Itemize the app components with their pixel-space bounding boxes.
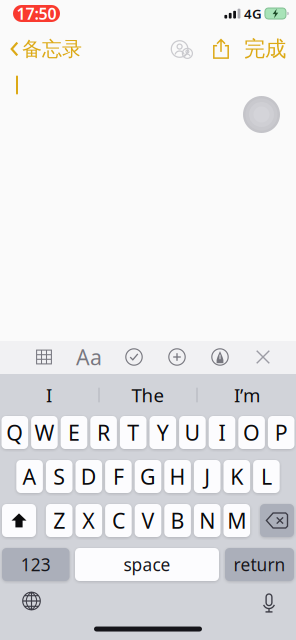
staticText: Aa bbox=[76, 343, 102, 371]
staticText: S bbox=[53, 462, 65, 491]
button[interactable]: Shift bbox=[2, 504, 36, 537]
button[interactable]: J bbox=[194, 460, 220, 493]
staticText: 备忘录 bbox=[22, 37, 82, 61]
button[interactable]: N bbox=[194, 504, 220, 537]
button[interactable]: The bbox=[99, 377, 196, 413]
staticText: 17:50 bbox=[16, 3, 56, 24]
button[interactable]: X bbox=[75, 504, 102, 537]
staticText: The bbox=[131, 383, 164, 407]
button[interactable]: D bbox=[75, 460, 102, 493]
button[interactable]: 备忘录 bbox=[1, 29, 91, 69]
button[interactable]: V bbox=[135, 504, 161, 537]
staticText: P bbox=[275, 418, 288, 447]
button[interactable]: R bbox=[90, 416, 117, 449]
button[interactable]: E bbox=[61, 416, 87, 449]
button[interactable]: return bbox=[225, 548, 294, 581]
button[interactable]: Format bbox=[68, 335, 110, 379]
staticText: Q bbox=[6, 418, 23, 447]
button[interactable]: Markup bbox=[203, 340, 237, 374]
button[interactable]: Add People bbox=[163, 31, 201, 67]
button[interactable]: O bbox=[238, 416, 265, 449]
staticText: 完成 bbox=[244, 36, 286, 62]
button[interactable]: Table bbox=[28, 341, 60, 372]
button[interactable]: Z bbox=[46, 504, 72, 537]
staticText: B bbox=[171, 506, 185, 535]
button[interactable]: Checklist bbox=[117, 340, 151, 374]
staticText: H bbox=[170, 462, 186, 491]
staticText: L bbox=[261, 462, 272, 491]
button[interactable]: Delete bbox=[260, 504, 294, 537]
staticText: C bbox=[112, 506, 125, 535]
button[interactable]: Close Keyboard bbox=[247, 341, 278, 372]
staticText: G bbox=[140, 462, 156, 491]
button[interactable]: I bbox=[209, 416, 235, 449]
button[interactable]: Y bbox=[149, 416, 176, 449]
button[interactable]: C bbox=[105, 504, 132, 537]
button[interactable]: Add Attachment bbox=[160, 340, 194, 374]
button[interactable]: T bbox=[120, 416, 146, 449]
staticText: A bbox=[23, 462, 37, 491]
staticText: I bbox=[46, 383, 52, 407]
button[interactable]: H bbox=[164, 460, 191, 493]
staticText: 4G bbox=[244, 5, 262, 22]
staticText: J bbox=[204, 462, 210, 491]
button[interactable]: G bbox=[135, 460, 161, 493]
staticText: D bbox=[81, 462, 97, 491]
staticText: space bbox=[123, 553, 170, 576]
button[interactable]: F bbox=[105, 460, 132, 493]
button[interactable]: 123 bbox=[2, 548, 69, 581]
button[interactable]: Switch Keyboard bbox=[15, 584, 48, 617]
staticText: X bbox=[82, 506, 95, 535]
button[interactable]: M bbox=[223, 504, 250, 537]
staticText: F bbox=[113, 462, 124, 491]
button[interactable]: S bbox=[46, 460, 72, 493]
staticText: return bbox=[233, 553, 285, 576]
staticText: W bbox=[34, 418, 54, 447]
staticText: M bbox=[227, 506, 246, 535]
button[interactable]: I’m bbox=[198, 377, 295, 413]
staticText: I’m bbox=[234, 383, 260, 407]
staticText: E bbox=[68, 418, 80, 447]
staticText: R bbox=[97, 418, 110, 447]
button[interactable]: L bbox=[253, 460, 280, 493]
staticText: Y bbox=[157, 418, 169, 447]
button[interactable]: W bbox=[31, 416, 58, 449]
button[interactable]: B bbox=[164, 504, 191, 537]
button[interactable]: I bbox=[0, 377, 97, 413]
staticText: T bbox=[127, 418, 139, 447]
button[interactable]: U bbox=[179, 416, 206, 449]
button[interactable]: Dictate bbox=[254, 585, 283, 620]
button[interactable]: A bbox=[16, 460, 43, 493]
button[interactable]: space bbox=[75, 548, 219, 581]
staticText: V bbox=[141, 506, 154, 535]
button[interactable]: P bbox=[268, 416, 294, 449]
staticText: 123 bbox=[21, 553, 51, 576]
button[interactable]: Share bbox=[204, 30, 237, 67]
button[interactable]: K bbox=[223, 460, 250, 493]
button[interactable]: Q bbox=[1, 416, 28, 449]
staticText: K bbox=[230, 462, 243, 491]
button[interactable]: 完成 bbox=[237, 30, 293, 68]
staticText: O bbox=[243, 418, 260, 447]
staticText: Z bbox=[53, 506, 65, 535]
staticText: N bbox=[199, 506, 215, 535]
staticText: U bbox=[184, 418, 200, 447]
staticText: I bbox=[218, 418, 225, 447]
